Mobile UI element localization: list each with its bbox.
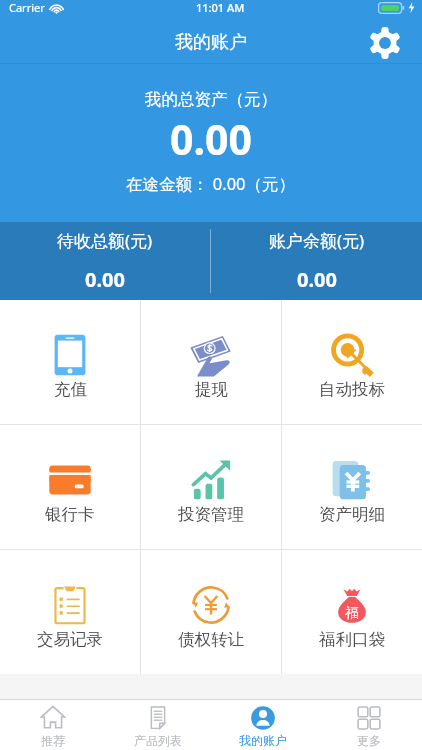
staticText: 11:01 AM	[196, 0, 245, 15]
staticText: 福利口袋	[319, 629, 385, 650]
button[interactable]: 投资管理	[141, 425, 281, 549]
button[interactable]: 自动投标	[282, 300, 422, 424]
staticText: 充值	[54, 379, 87, 400]
staticText: 0.00	[297, 266, 337, 293]
staticText: 账户余额(元)	[269, 229, 365, 252]
button[interactable]: 账户余额(元)	[211, 222, 422, 300]
staticText: 交易记录	[37, 629, 103, 650]
staticText: Carrier	[9, 0, 45, 15]
button[interactable]: 推荐	[0, 700, 105, 750]
staticText: 福	[345, 604, 359, 621]
staticText: 资产明细	[319, 504, 385, 525]
staticText: 0.00	[85, 266, 125, 293]
button[interactable]: 更多	[316, 700, 422, 750]
button[interactable]: 福	[282, 550, 422, 674]
button[interactable]: 资产明细	[282, 425, 422, 549]
button[interactable]: 充值	[0, 300, 140, 424]
staticText: 债权转让	[178, 629, 244, 650]
button[interactable]: Settings	[367, 25, 403, 61]
staticText: 在途金额： 0.00（元）	[126, 172, 296, 195]
staticText: 银行卡	[45, 504, 95, 525]
button[interactable]: 银行卡	[0, 425, 140, 549]
staticText: 推荐	[41, 733, 65, 748]
staticText: 产品列表	[134, 733, 182, 748]
staticText: 我的总资产（元）	[145, 89, 277, 110]
staticText: 自动投标	[319, 379, 385, 400]
button[interactable]: 产品列表	[105, 700, 210, 750]
staticText: 提现	[195, 379, 228, 400]
button[interactable]: 提现	[141, 300, 281, 424]
button[interactable]: 我的账户	[210, 700, 316, 750]
staticText: 投资管理	[178, 504, 244, 525]
button[interactable]: 待收总额(元)	[0, 222, 210, 300]
button[interactable]: 交易记录	[0, 550, 140, 674]
button[interactable]: 债权转让	[141, 550, 281, 674]
staticText: 我的账户	[239, 733, 287, 748]
staticText: 待收总额(元)	[57, 229, 153, 252]
staticText: 我的账户	[175, 31, 247, 54]
staticText: 0.00	[170, 111, 252, 167]
staticText: 更多	[357, 733, 381, 748]
